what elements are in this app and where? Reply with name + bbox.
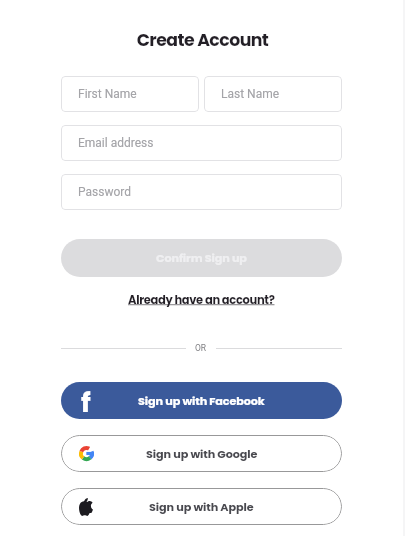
staticText: Email address [78, 136, 154, 150]
staticText: First Name [78, 87, 137, 101]
staticText: f [81, 384, 91, 414]
staticText: OR [195, 343, 207, 353]
button[interactable]: Last Name [204, 76, 342, 112]
staticText: Confirm Sign up [156, 250, 247, 266]
staticText: Last Name [221, 87, 280, 101]
button[interactable]: Already have an account? [124, 288, 279, 312]
staticText: Create Account [0, 28, 405, 52]
staticText: Sign up with Google [146, 446, 258, 462]
staticText: Sign up with Facebook [138, 393, 265, 409]
staticText: Password [78, 185, 132, 199]
button[interactable]: First Name [61, 76, 199, 112]
other: Facebook [79, 384, 93, 414]
button[interactable]: Sign up with Facebook [61, 382, 342, 419]
button[interactable]: Email address [61, 125, 342, 161]
other: Apple [79, 498, 93, 516]
other: Google [79, 446, 94, 461]
button[interactable]: Confirm Sign up [61, 239, 342, 277]
staticText: Sign up with Apple [149, 499, 254, 515]
button[interactable]: Sign up with Apple [61, 488, 342, 525]
button[interactable]: Password [61, 174, 342, 210]
button[interactable]: Sign up with Google [61, 435, 342, 472]
